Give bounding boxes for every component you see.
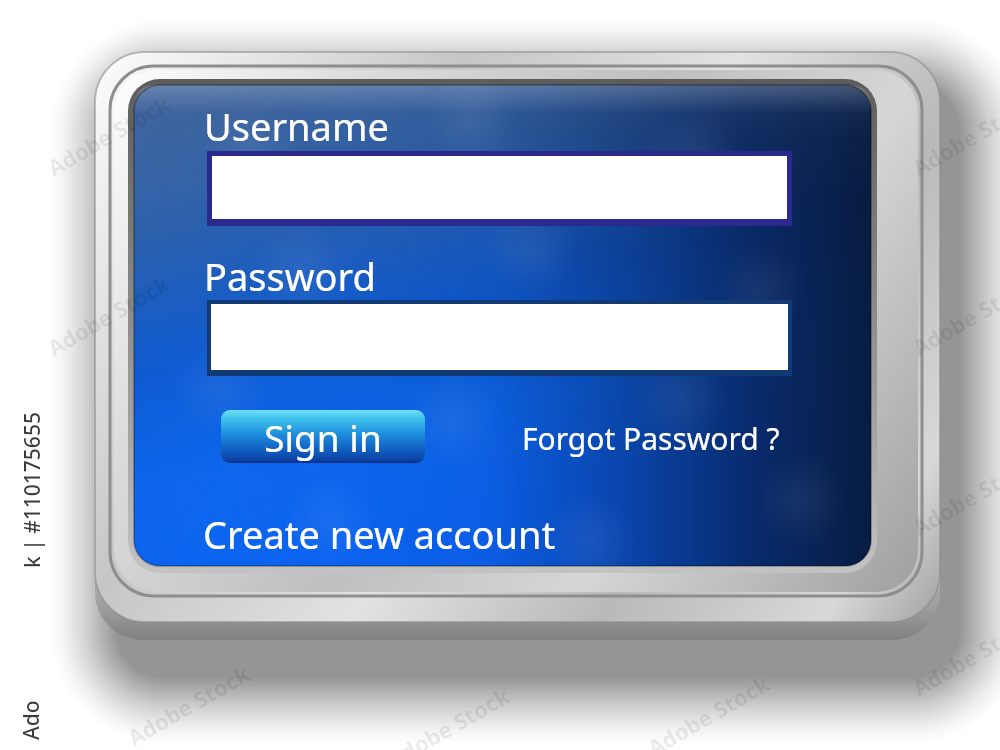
staticText: Adobe Stock [42,268,175,362]
staticText: Adobe Stock [907,88,1000,182]
staticText: Sign in [264,412,382,462]
button[interactable]: Sign in [221,410,425,463]
staticText: Adobe Stock [907,268,1000,362]
button[interactable]: Username input field [207,151,792,226]
staticText: Adobe Stock [907,608,1000,702]
staticText: Adobe Stock [382,680,515,750]
staticText: Create new account [203,508,556,556]
staticText: Adobe Stock [42,88,175,182]
button[interactable]: Password input field [207,300,792,376]
button[interactable]: Forgot Password ? [522,418,794,458]
staticText: Forgot Password ? [522,418,780,458]
staticText: Ado [17,700,46,740]
staticText: Adobe Stock [642,668,775,750]
staticText: Adobe Stock [907,448,1000,542]
staticText: Adobe Stock [122,658,255,750]
staticText: Username [204,100,389,152]
staticText: Password [204,250,376,302]
button[interactable]: Create new account [203,508,593,556]
staticText: k | #110175655 [18,412,47,568]
